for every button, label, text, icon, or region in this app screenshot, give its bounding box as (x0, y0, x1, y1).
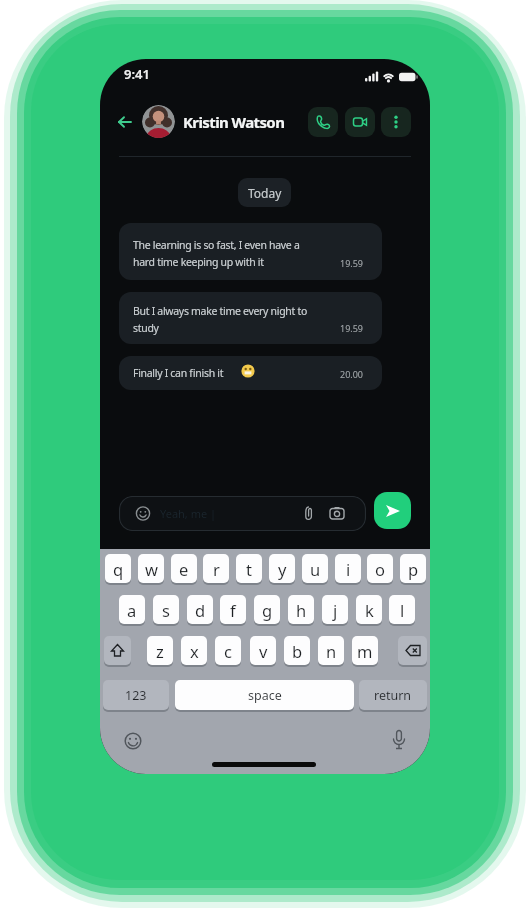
button[interactable]: i (335, 554, 361, 583)
staticText: g (262, 599, 273, 621)
button[interactable]: y (269, 554, 295, 583)
staticText: q (113, 558, 124, 580)
staticText: 9:41 (124, 65, 150, 83)
staticText: z (156, 640, 164, 662)
button[interactable]: s (153, 595, 179, 624)
staticText: y (278, 558, 287, 580)
staticText: a (127, 599, 137, 621)
staticText: Yeah, me | (160, 506, 217, 521)
button[interactable] (142, 105, 175, 138)
staticText: Today (248, 185, 282, 201)
button[interactable]: o (367, 554, 393, 583)
staticText: i (346, 558, 351, 580)
staticText: The learning is so fast, I even have a (133, 238, 300, 252)
button[interactable] (345, 107, 375, 137)
button[interactable]: w (138, 554, 164, 583)
staticText: s (162, 599, 170, 621)
staticText: b (292, 640, 303, 662)
button[interactable]: j (322, 595, 348, 624)
staticText: j (333, 599, 338, 621)
button[interactable]: m (352, 636, 378, 665)
button[interactable]: k (356, 595, 382, 624)
button[interactable]: e (171, 554, 197, 583)
staticText: 19.59 (340, 257, 364, 269)
button[interactable]: Yeah, me | (119, 496, 366, 531)
button[interactable]: q (105, 554, 131, 583)
staticText: n (326, 640, 337, 662)
button[interactable] (104, 636, 131, 665)
button[interactable]: n (318, 636, 344, 665)
button[interactable] (398, 636, 427, 665)
button[interactable]: p (400, 554, 426, 583)
staticText: c (224, 640, 232, 662)
staticText: p (408, 558, 419, 580)
staticText: t (246, 558, 252, 580)
button[interactable]: r (203, 554, 229, 583)
button[interactable]: l (389, 595, 415, 624)
button[interactable]: u (302, 554, 328, 583)
button[interactable]: x (181, 636, 207, 665)
staticText: w (145, 558, 158, 580)
button[interactable]: d (187, 595, 213, 624)
staticText: Finally I can finish it (133, 366, 224, 380)
button[interactable]: t (236, 554, 262, 583)
button[interactable]: f (220, 595, 246, 624)
staticText: space (248, 687, 282, 704)
staticText: hard time keeping up with it (133, 255, 264, 269)
staticText: v (259, 640, 268, 662)
button[interactable]: a (119, 595, 145, 624)
staticText: But I always make time every night to (133, 304, 308, 318)
button[interactable] (112, 109, 138, 135)
button[interactable] (120, 728, 146, 754)
button[interactable] (381, 107, 411, 137)
button[interactable]: 123 (103, 680, 169, 710)
staticText: 123 (125, 687, 147, 704)
staticText: e (179, 558, 189, 580)
button[interactable]: b (284, 636, 310, 665)
staticText: l (400, 599, 405, 621)
staticText: Kristin Watson (183, 112, 285, 132)
button[interactable]: z (147, 636, 173, 665)
button[interactable]: g (254, 595, 280, 624)
button[interactable] (386, 726, 412, 754)
staticText: 19.59 (340, 322, 364, 334)
button[interactable] (308, 107, 338, 137)
staticText: d (195, 599, 206, 621)
staticText: f (230, 599, 236, 621)
button[interactable]: return (359, 680, 427, 710)
staticText: k (365, 599, 374, 621)
staticText: return (374, 687, 412, 704)
button[interactable]: h (288, 595, 314, 624)
staticText: m (357, 640, 373, 662)
staticText: 20.00 (340, 368, 364, 380)
staticText: h (296, 599, 307, 621)
staticText: o (375, 558, 385, 580)
button[interactable]: v (250, 636, 276, 665)
staticText: r (213, 558, 220, 580)
button[interactable] (374, 492, 411, 529)
staticText: x (190, 640, 199, 662)
staticText: study (133, 321, 159, 335)
staticText: u (310, 558, 321, 580)
button[interactable]: c (215, 636, 241, 665)
button[interactable]: space (175, 680, 354, 710)
